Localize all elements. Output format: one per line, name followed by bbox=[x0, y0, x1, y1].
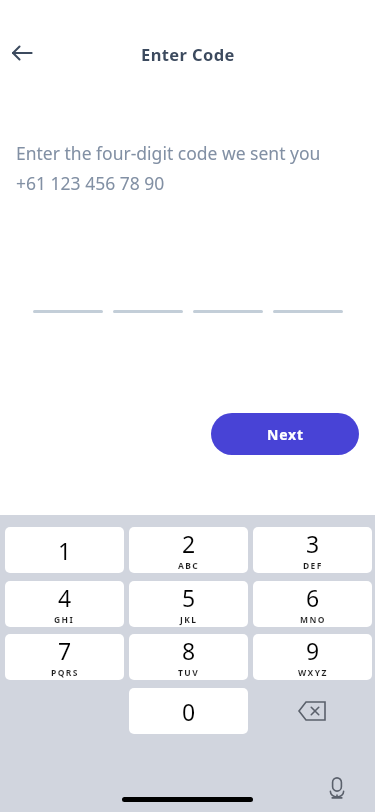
button[interactable]: 2 bbox=[129, 527, 248, 573]
staticText: 0 bbox=[182, 696, 196, 727]
staticText: JKL bbox=[180, 614, 198, 626]
staticText: PQRS bbox=[51, 667, 79, 679]
button[interactable]: 6 bbox=[253, 581, 372, 627]
staticText: 2 bbox=[182, 528, 196, 559]
staticText: MNO bbox=[300, 614, 326, 626]
button[interactable]: 9 bbox=[253, 634, 372, 680]
staticText: 5 bbox=[182, 582, 196, 613]
staticText: GHI bbox=[54, 614, 75, 626]
staticText: 1 bbox=[58, 535, 72, 566]
button[interactable]: Code digit bbox=[193, 279, 263, 313]
button[interactable]: Voice input bbox=[312, 763, 362, 812]
staticText: Enter the four-digit code we sent you +6… bbox=[16, 141, 339, 195]
button[interactable]: Back bbox=[6, 37, 38, 69]
staticText: WXYZ bbox=[298, 667, 328, 679]
button[interactable]: Code digit bbox=[113, 279, 183, 313]
staticText: ABC bbox=[178, 560, 200, 572]
button[interactable]: 3 bbox=[253, 527, 372, 573]
staticText: Enter Code bbox=[141, 43, 235, 65]
button[interactable]: Next bbox=[211, 413, 359, 455]
button[interactable]: Code digit bbox=[33, 279, 103, 313]
button[interactable]: 7 bbox=[5, 634, 124, 680]
staticText: 3 bbox=[306, 528, 320, 559]
staticText: TUV bbox=[178, 667, 200, 679]
button[interactable]: 0 bbox=[129, 688, 248, 734]
staticText: 7 bbox=[58, 635, 72, 666]
staticText: 8 bbox=[182, 635, 196, 666]
button[interactable]: 5 bbox=[129, 581, 248, 627]
staticText: 6 bbox=[306, 582, 320, 613]
staticText: 4 bbox=[58, 582, 72, 613]
staticText: Next bbox=[267, 425, 304, 444]
button[interactable]: 4 bbox=[5, 581, 124, 627]
button[interactable]: Code digit bbox=[273, 279, 343, 313]
button[interactable]: Backspace bbox=[252, 688, 371, 734]
staticText: DEF bbox=[303, 560, 323, 572]
staticText: 9 bbox=[306, 635, 320, 666]
button[interactable]: 1 bbox=[5, 527, 124, 573]
button[interactable]: 8 bbox=[129, 634, 248, 680]
